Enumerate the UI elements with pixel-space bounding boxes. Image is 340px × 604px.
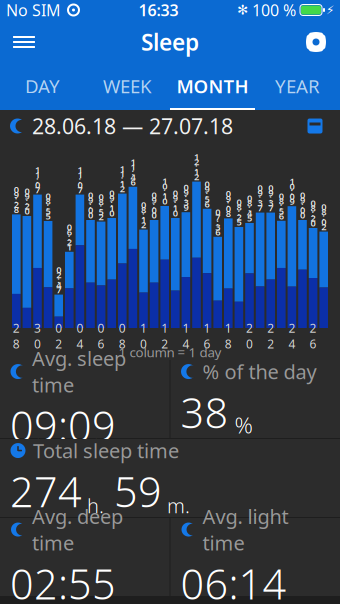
staticText: 1 — [77, 163, 82, 176]
staticText: 2 — [67, 236, 72, 248]
staticText: 5 — [46, 210, 51, 222]
staticText: 2 — [194, 155, 199, 168]
staticText: 9 — [173, 192, 178, 204]
staticText: : — [322, 210, 325, 223]
button[interactable]: Settings — [294, 20, 338, 64]
staticText: : — [290, 185, 293, 197]
staticText: 0 — [247, 192, 252, 204]
staticText: : — [301, 199, 304, 211]
staticText: : — [68, 231, 71, 243]
button[interactable]: Choose date range — [300, 111, 330, 141]
staticText: m. — [162, 492, 190, 519]
button[interactable]: DAY — [0, 64, 85, 110]
staticText: 26 — [310, 320, 317, 352]
staticText: 3 — [215, 221, 220, 233]
staticText: : — [89, 199, 92, 211]
staticText: 0 — [173, 207, 178, 219]
staticText: 0 — [236, 196, 241, 208]
button[interactable]: MONTH — [170, 64, 255, 110]
staticText: 0 — [152, 189, 157, 201]
staticText: 3 — [183, 196, 188, 208]
staticText: : — [269, 191, 272, 204]
staticText: 0 — [88, 189, 93, 201]
staticText: 3 — [268, 196, 273, 209]
staticText: 8 — [321, 205, 326, 218]
staticText: 04 — [76, 320, 83, 352]
staticText: : — [142, 208, 145, 221]
staticText: 6 — [67, 226, 72, 238]
staticText: 4 — [130, 171, 135, 183]
staticText: 1 — [130, 161, 135, 173]
button[interactable]: Menu — [2, 20, 46, 64]
staticText: 0 — [14, 183, 19, 196]
staticText: 2 — [120, 182, 125, 195]
staticText: 8 — [236, 201, 241, 213]
staticText: 0 — [162, 195, 167, 207]
staticText: 30 — [34, 320, 41, 352]
staticText: 6 — [205, 198, 210, 210]
staticText: 0 — [279, 190, 284, 202]
staticText: : — [216, 216, 219, 228]
staticText: 5 — [236, 216, 241, 228]
staticText: 7 — [268, 201, 273, 214]
staticText: : — [131, 166, 134, 178]
staticText: 2 — [14, 198, 19, 211]
staticText: : — [195, 160, 198, 173]
staticText: 16 — [204, 320, 211, 352]
staticText: 0 — [152, 209, 157, 221]
staticText: 02:55 — [10, 556, 116, 604]
staticText: 9 — [183, 201, 188, 213]
button[interactable]: YEAR — [255, 64, 340, 110]
staticText: 0 — [24, 205, 29, 217]
staticText: 0 — [289, 190, 294, 202]
staticText: 5 — [46, 205, 51, 217]
staticText: 0 — [77, 178, 82, 191]
button[interactable]: WEEK — [85, 64, 170, 110]
staticText: 1 — [67, 241, 72, 253]
staticText: 0 — [88, 204, 93, 216]
staticText: 1 — [120, 162, 125, 175]
staticText: 0 — [183, 181, 188, 193]
staticText: 8 — [247, 197, 252, 209]
staticText: 1 — [141, 213, 146, 226]
staticText: 0 — [321, 215, 326, 228]
staticText: : — [25, 195, 28, 207]
staticText: 2 — [99, 210, 104, 223]
staticText: 8 — [279, 195, 284, 207]
staticText: 16:33 — [138, 0, 178, 21]
staticText: 2 — [56, 268, 61, 281]
staticText: 7 — [215, 211, 220, 223]
staticText: 0 — [109, 187, 114, 199]
staticText: 9 — [14, 188, 19, 201]
staticText: 9 — [183, 186, 188, 198]
staticText: 9 — [300, 194, 305, 206]
staticText: 8 — [46, 195, 51, 207]
staticText: 9 — [226, 192, 231, 205]
staticText: 0 — [46, 190, 51, 202]
staticText: : — [36, 173, 39, 186]
staticText: : — [206, 188, 209, 200]
staticText: ⚡︎ — [326, 3, 334, 17]
staticText: 0 — [173, 187, 178, 199]
staticText: 8 — [226, 207, 231, 220]
staticText: 38 — [180, 385, 228, 440]
staticText: : — [184, 191, 187, 203]
staticText: ✻ — [237, 2, 248, 17]
staticText: : — [312, 207, 315, 219]
staticText: 0 — [268, 181, 273, 194]
staticText: 0 — [99, 190, 104, 203]
staticText: 0 — [215, 206, 220, 218]
staticText: DAY — [25, 74, 60, 98]
staticText: 9 — [88, 194, 93, 206]
staticText: 5 — [247, 212, 252, 224]
staticText: 20 — [246, 320, 253, 352]
staticText: 0 — [311, 217, 316, 229]
staticText: 12 — [161, 320, 168, 352]
staticText: 4 — [247, 207, 252, 219]
staticText: 18 — [225, 320, 232, 352]
staticText: 1 — [109, 202, 114, 214]
staticText: 08 — [119, 320, 126, 352]
staticText: 2 — [194, 170, 199, 183]
staticText: 0 — [226, 187, 231, 200]
staticText: 0 — [141, 198, 146, 211]
